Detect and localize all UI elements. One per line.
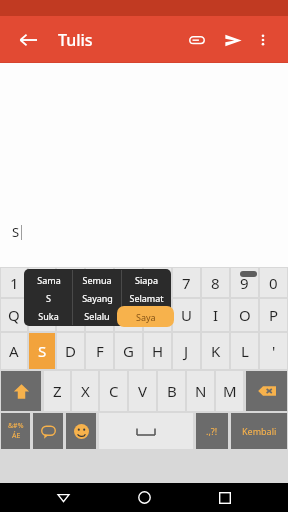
button[interactable]: Symbols: [1, 413, 30, 449]
staticText: Z: [53, 381, 62, 401]
button[interactable]: W: [29, 299, 55, 331]
button[interactable]: Suka: [25, 307, 72, 325]
button[interactable]: Q: [1, 299, 27, 331]
button[interactable]: Shift: [1, 371, 41, 411]
button[interactable]: Sama: [25, 270, 72, 289]
button[interactable]: F: [86, 333, 113, 369]
staticText: O: [239, 305, 251, 325]
button[interactable]: Recents: [207, 483, 243, 512]
button[interactable]: Punctuation: [196, 413, 228, 449]
button[interactable]: Home: [126, 483, 162, 512]
button[interactable]: Selalu: [73, 307, 121, 325]
staticText: H: [152, 341, 164, 361]
button[interactable]: Saya: [117, 306, 174, 327]
button[interactable]: 2: [29, 268, 55, 297]
staticText: M: [223, 381, 237, 401]
staticText: 2: [38, 273, 47, 293]
button[interactable]: 9: [231, 268, 258, 297]
button[interactable]: Backspace: [246, 371, 287, 411]
button[interactable]: 0: [260, 268, 287, 297]
button[interactable]: Sayang: [73, 289, 121, 307]
button[interactable]: O: [231, 299, 258, 331]
button[interactable]: E: [57, 299, 84, 331]
staticText: Q: [8, 305, 20, 325]
button[interactable]: J: [173, 333, 200, 369]
button[interactable]: M: [216, 371, 243, 411]
button[interactable]: B: [158, 371, 185, 411]
button[interactable]: 8: [202, 268, 229, 297]
staticText: T: [124, 305, 133, 325]
button[interactable]: P: [260, 299, 287, 331]
button[interactable]: Kembali: [231, 413, 287, 449]
button[interactable]: Voice input: [33, 413, 63, 449]
button[interactable]: I: [202, 299, 229, 331]
button[interactable]: Back: [12, 24, 44, 56]
staticText: 7: [182, 273, 191, 293]
button[interactable]: R: [86, 299, 113, 331]
staticText: Suka: [38, 310, 59, 322]
staticText: I: [213, 305, 219, 325]
staticText: N: [195, 381, 207, 401]
button[interactable]: 6: [144, 268, 171, 297]
staticText: 9: [240, 273, 249, 293]
staticText: Selamat: [129, 292, 164, 304]
staticText: Kembali: [242, 425, 277, 437]
button[interactable]: S: [29, 333, 55, 369]
staticText: A: [9, 341, 19, 361]
staticText: Sayang: [82, 292, 113, 304]
button[interactable]: T: [115, 299, 142, 331]
staticText: 3: [66, 273, 75, 293]
staticText: S: [38, 341, 47, 361]
staticText: J: [184, 341, 189, 361]
staticText: 6: [153, 273, 162, 293]
staticText: S: [12, 223, 20, 241]
staticText: B: [167, 381, 177, 401]
button[interactable]: Z: [44, 371, 70, 411]
button[interactable]: X: [72, 371, 98, 411]
staticText: U: [181, 305, 192, 325]
button[interactable]: H: [144, 333, 171, 369]
button[interactable]: U: [173, 299, 200, 331]
staticText: Y: [153, 305, 162, 325]
staticText: Tulis: [58, 29, 93, 51]
button[interactable]: D: [57, 333, 84, 369]
button[interactable]: 5: [115, 268, 142, 297]
button[interactable]: G: [115, 333, 142, 369]
button[interactable]: ': [260, 333, 287, 369]
staticText: 4: [95, 273, 104, 293]
button[interactable]: [122, 307, 170, 325]
button[interactable]: N: [187, 371, 214, 411]
button[interactable]: Attach: [182, 25, 212, 55]
button[interactable]: S: [25, 289, 72, 307]
button[interactable]: Selamat: [122, 289, 170, 307]
staticText: F: [96, 341, 104, 361]
button[interactable]: K: [202, 333, 229, 369]
button[interactable]: Send: [218, 25, 248, 55]
staticText: E: [66, 305, 75, 325]
staticText: P: [269, 305, 279, 325]
staticText: Semua: [82, 274, 112, 286]
button[interactable]: Y: [144, 299, 171, 331]
staticText: G: [123, 341, 134, 361]
button[interactable]: Back: [45, 483, 81, 512]
button[interactable]: A: [1, 333, 27, 369]
staticText: C: [109, 381, 119, 401]
button[interactable]: 3: [57, 268, 84, 297]
button[interactable]: 4: [86, 268, 113, 297]
staticText: ': [272, 341, 276, 361]
staticText: K: [211, 341, 221, 361]
button[interactable]: Semua: [73, 270, 121, 289]
button[interactable]: More options: [250, 27, 276, 53]
button[interactable]: Space: [99, 413, 193, 449]
staticText: Siapa: [135, 274, 158, 286]
button[interactable]: C: [100, 371, 127, 411]
staticText: 1: [10, 273, 19, 293]
button[interactable]: 7: [173, 268, 200, 297]
button[interactable]: Siapa: [122, 270, 170, 289]
button[interactable]: 1: [1, 268, 27, 297]
button[interactable]: L: [231, 333, 258, 369]
staticText: X: [81, 381, 90, 401]
button[interactable]: Emoji: [66, 413, 96, 449]
button[interactable]: V: [129, 371, 156, 411]
